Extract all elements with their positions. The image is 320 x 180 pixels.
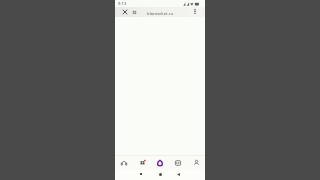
button[interactable]: Home bbox=[115, 155, 133, 170]
button[interactable]: Home bbox=[154, 169, 166, 179]
button[interactable]: Bookmark bbox=[130, 8, 139, 17]
staticText: 9:13 bbox=[118, 1, 127, 7]
button[interactable]: Express bbox=[151, 155, 169, 170]
button[interactable]: Back bbox=[172, 169, 184, 179]
button[interactable]: Catalog bbox=[133, 155, 151, 170]
button[interactable]: More options bbox=[190, 7, 199, 16]
button[interactable]: Profile bbox=[187, 155, 205, 170]
button[interactable]: Cart bbox=[169, 155, 187, 170]
button[interactable]: Close bbox=[120, 7, 129, 16]
staticText: blamarket.ru bbox=[147, 10, 174, 16]
button[interactable]: Recents bbox=[135, 169, 147, 179]
